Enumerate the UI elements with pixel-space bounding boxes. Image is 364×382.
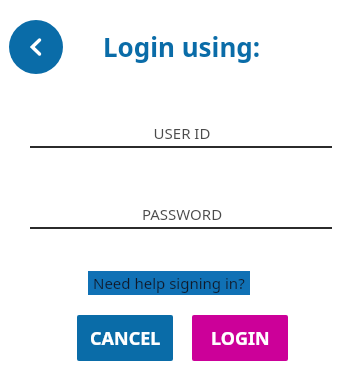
button[interactable]: Back [9,20,63,74]
staticText: PASSWORD [0,204,364,224]
button[interactable]: CANCEL [77,315,173,361]
staticText: LOGIN [211,326,270,351]
button[interactable]: LOGIN [192,315,288,361]
staticText: CANCEL [90,326,161,351]
button[interactable]: Need help signing in? [88,271,250,295]
staticText: USER ID [0,123,364,143]
staticText: Login using: [103,29,261,64]
staticText: Need help signing in? [93,273,245,293]
